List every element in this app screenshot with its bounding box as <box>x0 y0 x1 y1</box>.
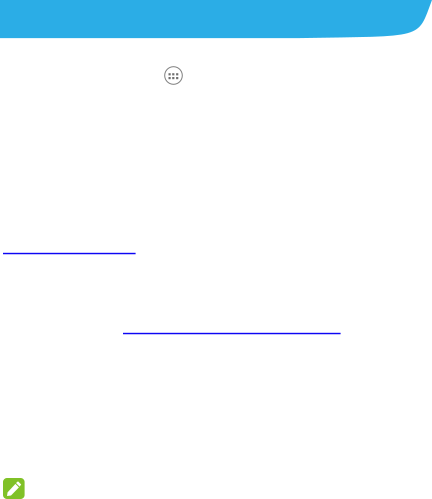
button[interactable]: Link <box>3 238 136 254</box>
button[interactable]: Compose <box>3 478 25 499</box>
button[interactable]: Link <box>123 318 341 334</box>
button[interactable]: All apps <box>164 66 183 85</box>
